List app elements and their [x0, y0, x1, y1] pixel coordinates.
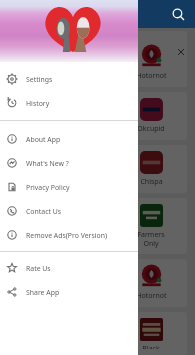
button[interactable]: Farmers Only [115, 198, 187, 254]
button[interactable]: Search [168, 4, 188, 24]
staticText: Okcupid [137, 124, 165, 134]
staticText: Rate Us [26, 264, 51, 273]
button[interactable]: Okcupid [115, 92, 187, 140]
staticText: About App [26, 135, 61, 144]
staticText: Settings [26, 75, 53, 84]
button[interactable]: Privacy Policy [0, 175, 138, 199]
button[interactable]: Settings [0, 67, 138, 91]
button[interactable]: Hinge [8, 190, 80, 238]
button[interactable]: Black [115, 312, 187, 355]
staticText: Bumble [31, 116, 57, 126]
button[interactable]: Contact Us [0, 199, 138, 223]
staticText: Chispa [140, 177, 163, 187]
button[interactable]: Zoosk [8, 243, 80, 291]
staticText: Black [142, 344, 160, 349]
button[interactable]: Hotornot [115, 259, 187, 307]
button[interactable]: Rate Us [0, 256, 138, 280]
staticText: Hotornot [136, 71, 167, 81]
staticText: Remove Ads(Pro Version) [26, 231, 107, 240]
staticText: History [26, 99, 50, 108]
staticText: Hotornot [136, 291, 167, 301]
button[interactable]: Close [174, 45, 187, 58]
button[interactable]: Share App [0, 280, 138, 304]
staticText: Contact Us [26, 207, 62, 216]
button[interactable]: Badoo [8, 137, 80, 185]
button[interactable]: History [0, 91, 138, 115]
staticText: Share App [26, 288, 60, 297]
button[interactable]: About App [0, 127, 138, 151]
staticText: Privacy Policy [26, 183, 70, 192]
button[interactable]: Tinder [8, 31, 80, 79]
button[interactable]: Chispa [115, 145, 187, 193]
staticText: What's New ? [26, 159, 69, 168]
button[interactable]: Hotornot [115, 31, 187, 87]
button[interactable]: What's New ? [0, 151, 138, 175]
staticText: Farmers Only [137, 230, 165, 248]
button[interactable]: Remove Ads(Pro Version) [0, 223, 138, 247]
button[interactable]: Bumble [8, 84, 80, 132]
